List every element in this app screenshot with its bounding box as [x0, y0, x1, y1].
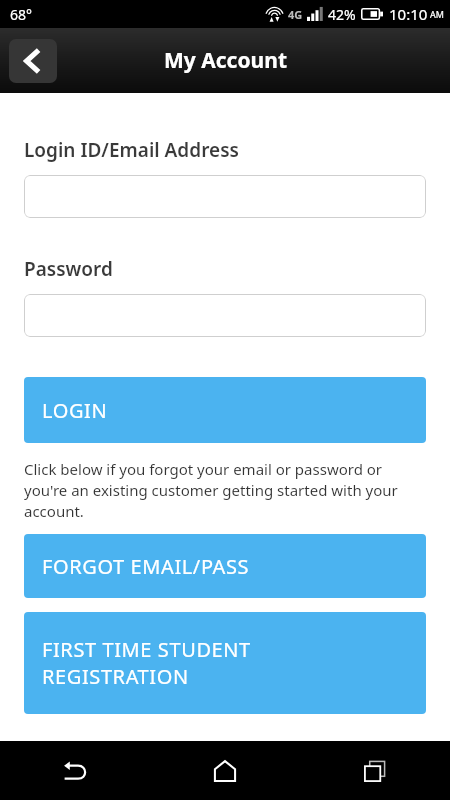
staticText: 10:10	[389, 4, 428, 24]
staticText: FIRST TIME STUDENT	[42, 636, 251, 663]
button[interactable]: Back	[9, 39, 57, 83]
button[interactable]	[24, 175, 426, 218]
button[interactable]: FIRST TIME STUDENT	[24, 612, 426, 714]
staticText: My Account	[164, 46, 287, 75]
button[interactable]: LOGIN	[24, 377, 426, 443]
staticText: FORGOT EMAIL/PASS	[42, 553, 250, 580]
staticText: 42%	[328, 5, 356, 24]
button[interactable]: Recent apps	[300, 741, 450, 800]
staticText: Password	[24, 256, 113, 282]
staticText: AM	[430, 8, 444, 20]
button[interactable]: Back	[0, 741, 150, 800]
staticText: REGISTRATION	[42, 663, 189, 690]
button[interactable]	[24, 294, 426, 337]
staticText: 4G	[288, 7, 303, 22]
staticText: 68°	[10, 5, 33, 24]
staticText: Login ID/Email Address	[24, 137, 239, 163]
button[interactable]: FORGOT EMAIL/PASS	[24, 534, 426, 598]
button[interactable]: Home	[150, 741, 300, 800]
staticText: Click below if you forgot your email or …	[24, 459, 426, 522]
staticText: LOGIN	[42, 397, 108, 424]
